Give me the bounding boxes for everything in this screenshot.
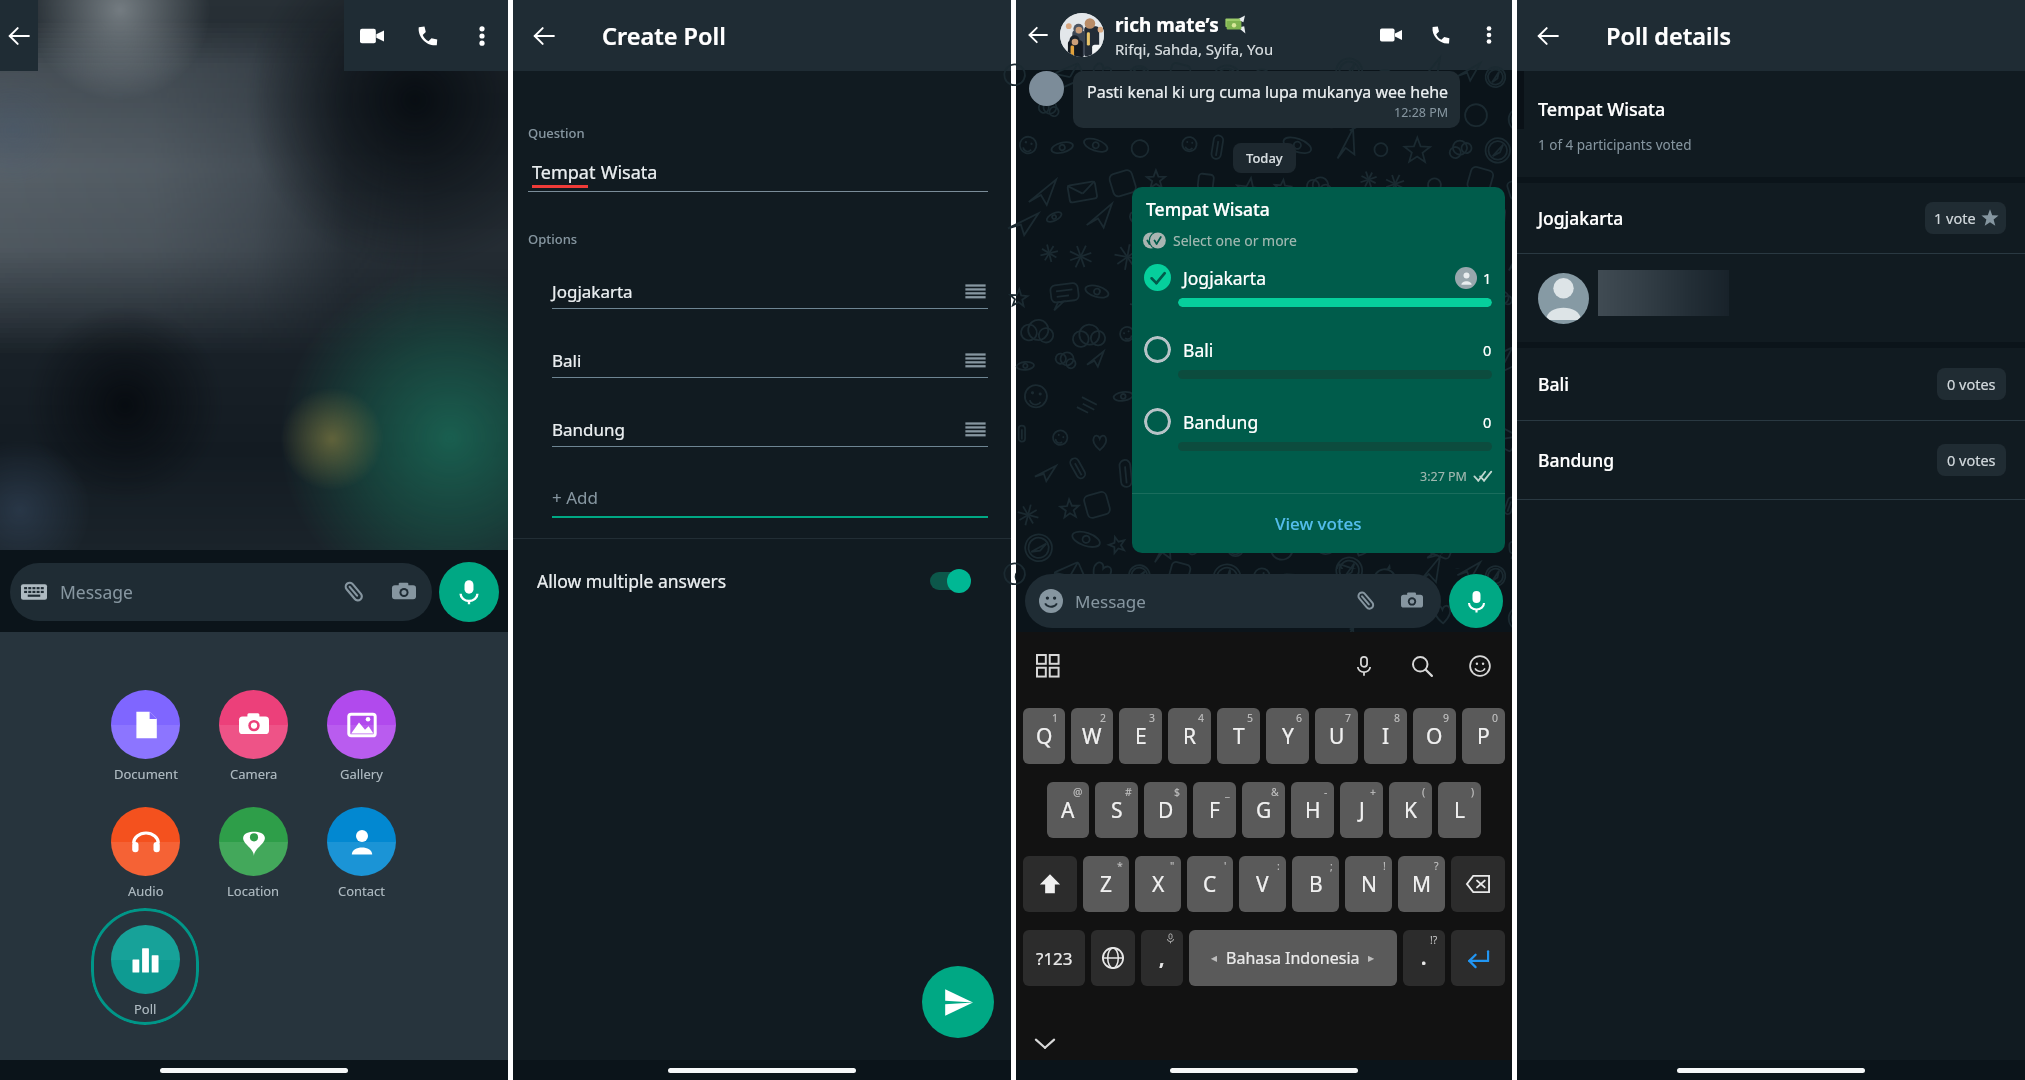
button[interactable]: I <box>1364 708 1407 764</box>
button[interactable]: Q <box>1023 708 1065 764</box>
button[interactable]: Allow multiple answers <box>513 539 1011 623</box>
button[interactable]: Camera <box>1397 586 1427 616</box>
staticText: Bahasa Indonesia <box>1226 947 1360 969</box>
button[interactable]: U <box>1315 708 1358 764</box>
button[interactable]: T <box>1217 708 1260 764</box>
staticText: M <box>1412 870 1432 899</box>
button[interactable]: P <box>1462 708 1505 764</box>
button[interactable]: rich mate’s <box>1115 12 1366 59</box>
button[interactable]: Back <box>1517 0 1579 71</box>
button[interactable] <box>1517 254 2025 342</box>
staticText: P <box>1477 722 1490 751</box>
button[interactable]: Jogjakarta <box>1517 183 2025 253</box>
button[interactable]: Voice message <box>1449 574 1503 628</box>
button[interactable]: R <box>1168 708 1211 764</box>
button[interactable]: E <box>1119 708 1162 764</box>
button[interactable]: Enter <box>1451 930 1505 986</box>
button[interactable]: Poll <box>91 908 199 1025</box>
button[interactable]: Reorder Bali <box>962 347 988 373</box>
button[interactable]: H <box>1291 782 1334 838</box>
button[interactable]: Bali <box>1517 348 2025 420</box>
staticText: Pasti kenal ki urg cuma lupa mukanya wee… <box>1087 81 1449 103</box>
button[interactable]: Voice call <box>400 0 456 71</box>
staticText: 9 <box>1443 711 1450 725</box>
button[interactable]: Z <box>1083 856 1129 912</box>
button[interactable]: B <box>1292 856 1339 912</box>
button[interactable]: F <box>1193 782 1236 838</box>
button[interactable]: Message <box>1025 574 1441 628</box>
button[interactable]: Video call <box>1366 0 1416 70</box>
staticText: Message <box>1075 590 1146 613</box>
staticText: Bandung <box>1538 448 1615 472</box>
button[interactable]: Voice call <box>1416 0 1466 70</box>
button[interactable]: Change language <box>1091 930 1135 986</box>
button[interactable]: G <box>1242 782 1285 838</box>
button[interactable]: Voice input <box>1348 650 1380 682</box>
staticText: " <box>1170 859 1175 873</box>
button[interactable]: D <box>1144 782 1187 838</box>
button[interactable]: Video call <box>344 0 400 71</box>
button[interactable]: C <box>1187 856 1233 912</box>
staticText: T <box>1233 722 1245 751</box>
button[interactable]: Y <box>1266 708 1309 764</box>
button[interactable]: Back <box>1016 0 1060 70</box>
button[interactable]: Shift <box>1023 856 1077 912</box>
button[interactable]: A <box>1047 782 1089 838</box>
button[interactable]: Message <box>10 563 432 621</box>
staticText: # <box>1125 785 1132 799</box>
staticText: Bali <box>552 349 582 372</box>
button[interactable]: More options <box>1466 0 1512 70</box>
button[interactable]: Location <box>219 807 288 900</box>
button[interactable]: Reorder Bandung <box>962 416 988 442</box>
button[interactable]: Back <box>513 0 575 71</box>
button[interactable]: L <box>1438 782 1481 838</box>
button[interactable]: W <box>1071 708 1113 764</box>
staticText: Tempat Wisata <box>1538 97 1666 122</box>
staticText: Message <box>60 580 133 604</box>
button[interactable]: Search <box>1406 650 1438 682</box>
button[interactable]: Reorder Jogjakarta <box>962 278 988 304</box>
button[interactable]: Camera <box>389 577 419 607</box>
staticText: 3 <box>1149 711 1156 725</box>
staticText: - <box>1324 785 1328 799</box>
button[interactable]: Camera <box>219 690 288 783</box>
button[interactable]: View votes <box>1132 494 1505 553</box>
button[interactable]: Gallery <box>327 690 396 783</box>
button[interactable]: Voice message <box>439 562 499 622</box>
button[interactable]: ◂ <box>1189 930 1397 986</box>
button[interactable]: ?123 <box>1023 930 1085 986</box>
button[interactable]: S <box>1095 782 1138 838</box>
button[interactable]: , <box>1141 930 1183 986</box>
staticText: J <box>1359 796 1365 825</box>
button[interactable]: Send poll <box>922 966 994 1038</box>
staticText: Tempat <box>532 160 596 185</box>
button[interactable]: + Add <box>552 486 988 518</box>
button[interactable]: Hide keyboard <box>1028 1027 1062 1059</box>
staticText: 1 vote <box>1934 208 1976 228</box>
button[interactable]: X <box>1135 856 1181 912</box>
button[interactable]: Attach <box>1351 586 1381 616</box>
button[interactable]: Attach <box>339 577 369 607</box>
button[interactable]: More options <box>456 0 508 71</box>
staticText: S <box>1111 796 1123 825</box>
staticText: Rifqi, Sahda, Syifa, You <box>1115 39 1274 59</box>
staticText: Tempat Wisata <box>1146 197 1270 221</box>
button[interactable]: K <box>1389 782 1432 838</box>
button[interactable]: Emoji <box>1464 650 1496 682</box>
button[interactable]: J <box>1340 782 1383 838</box>
button[interactable]: Bandung <box>1517 421 2025 499</box>
button[interactable]: Audio <box>111 807 180 900</box>
button[interactable]: Contact <box>327 807 396 900</box>
button[interactable]: Backspace <box>1451 856 1505 912</box>
button[interactable]: O <box>1413 708 1456 764</box>
button[interactable]: V <box>1239 856 1286 912</box>
button[interactable]: Clipboard <box>1032 650 1064 682</box>
staticText: D <box>1158 796 1174 825</box>
button[interactable]: . <box>1403 930 1445 986</box>
button[interactable]: M <box>1398 856 1445 912</box>
button[interactable]: Document <box>111 690 180 783</box>
staticText: ; <box>1330 859 1333 873</box>
staticText: Allow multiple answers <box>537 569 727 593</box>
button[interactable]: Back <box>0 0 38 71</box>
button[interactable]: N <box>1345 856 1392 912</box>
